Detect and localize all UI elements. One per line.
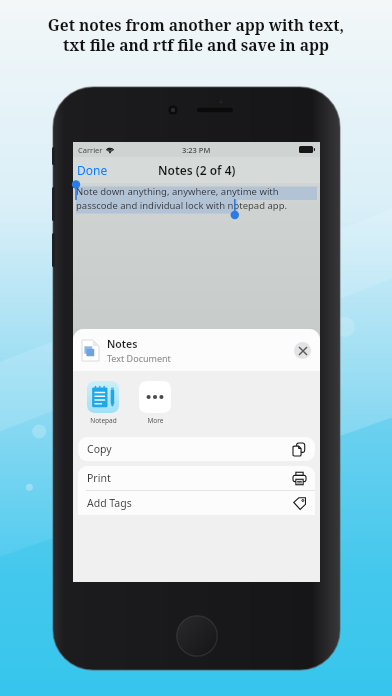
button[interactable]: Copy xyxy=(78,437,315,461)
staticText: Text Document xyxy=(107,352,171,364)
button[interactable]: Done xyxy=(77,162,108,178)
button[interactable]: Home xyxy=(176,615,218,657)
staticText: Add Tags xyxy=(87,496,293,510)
staticText: Done xyxy=(77,162,108,178)
staticText: 3:23 PM xyxy=(182,145,211,155)
staticText: Copy xyxy=(87,442,293,456)
button[interactable]: Close xyxy=(294,342,311,359)
staticText: Note down anything, anywhere, anytime wi… xyxy=(76,185,317,211)
staticText: Get notes from another app with text, tx… xyxy=(10,14,382,56)
button[interactable]: Notepad xyxy=(84,381,122,425)
staticText: Carrier xyxy=(78,145,103,155)
staticText: More xyxy=(147,416,164,425)
button[interactable]: Print xyxy=(78,466,315,490)
staticText: Notes xyxy=(107,337,138,351)
staticText: Notes (2 of 4) xyxy=(158,162,236,178)
button[interactable]: Add Tags xyxy=(78,491,315,515)
staticText: Notepad xyxy=(90,416,117,425)
button[interactable]: More xyxy=(136,381,174,425)
staticText: Print xyxy=(87,471,293,485)
